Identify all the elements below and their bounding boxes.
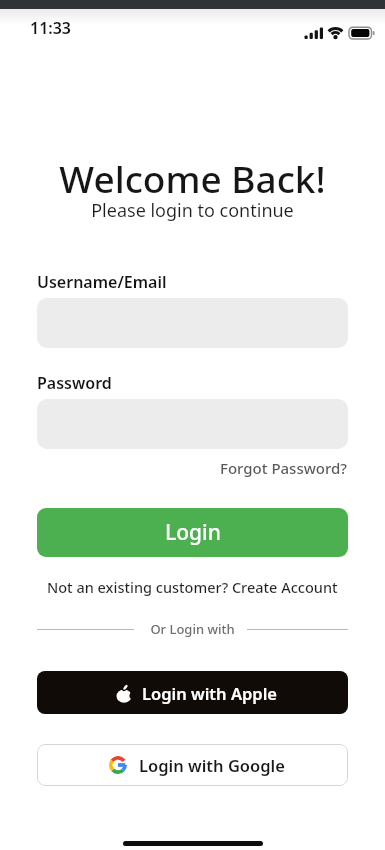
- button[interactable]: Login: [37, 508, 348, 557]
- staticText: Password: [37, 372, 112, 394]
- staticText: Login: [165, 518, 221, 547]
- staticText: Not an existing customer? Create Account: [47, 577, 338, 597]
- staticText: Welcome Back!: [0, 153, 385, 203]
- staticText: Login with Apple: [142, 682, 277, 704]
- staticText: Forgot Password?: [220, 458, 348, 478]
- button[interactable]: Not an existing customer? Create Account: [0, 577, 385, 597]
- button[interactable]: Login with Apple: [37, 671, 348, 714]
- button[interactable]: Forgot Password?: [220, 458, 348, 478]
- staticText: Username/Email: [37, 271, 167, 293]
- staticText: Or Login with: [0, 620, 385, 638]
- staticText: 11:33: [30, 17, 72, 39]
- button[interactable]: Login with Google: [37, 744, 348, 786]
- staticText: Login with Google: [139, 754, 285, 776]
- staticText: Please login to continue: [0, 198, 385, 223]
